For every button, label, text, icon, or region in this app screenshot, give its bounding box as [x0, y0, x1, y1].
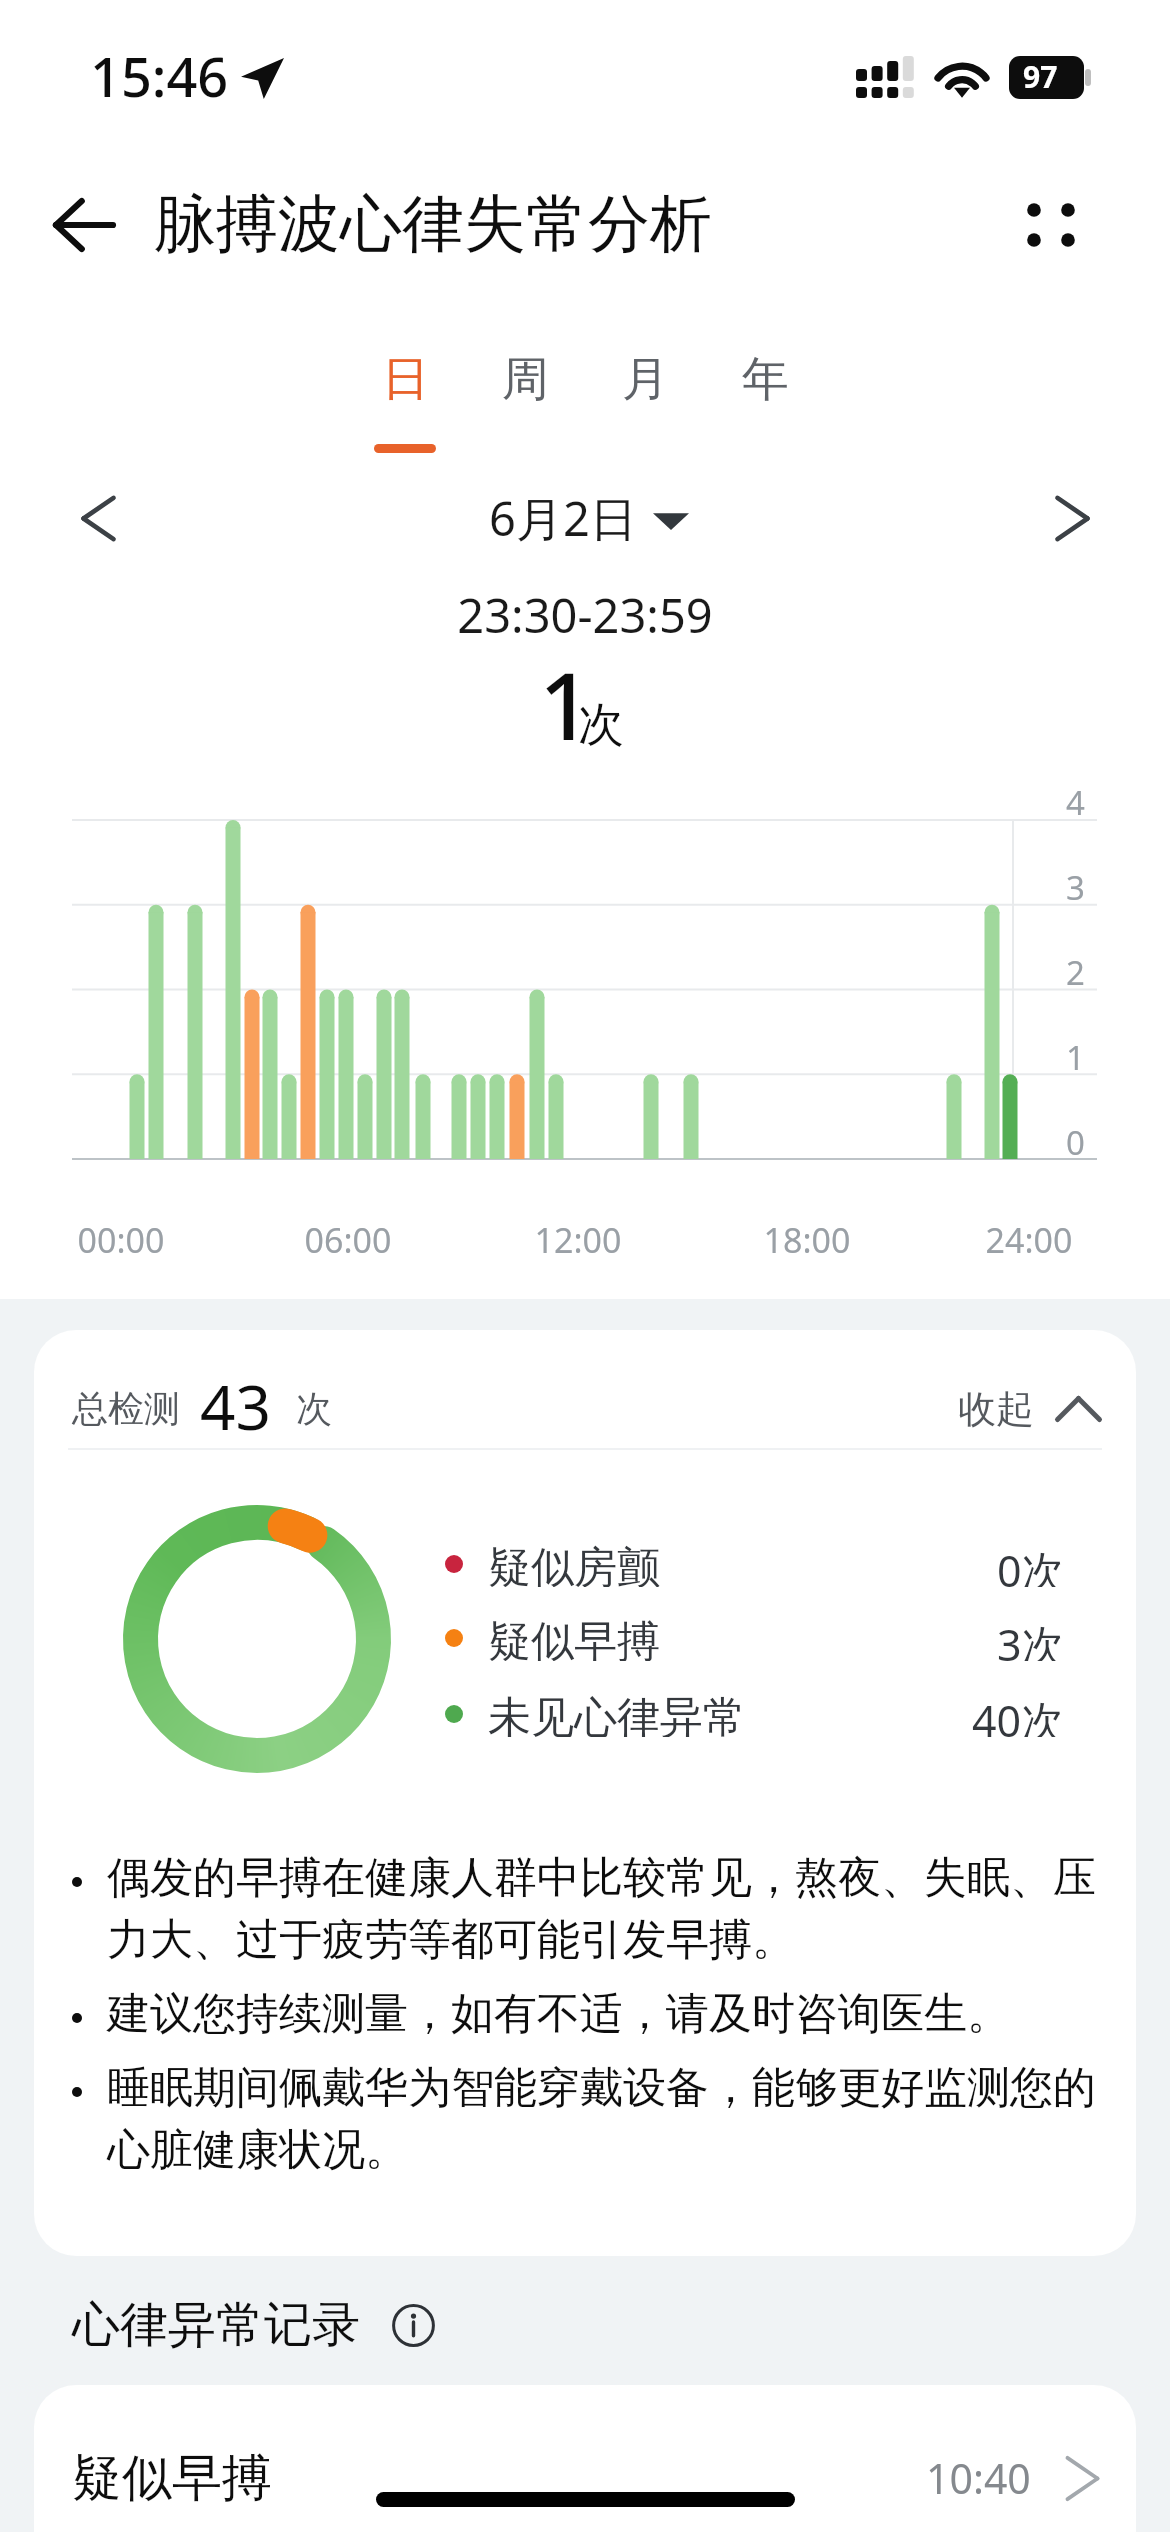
staticText: 4 — [1066, 780, 1085, 825]
staticText: 建议您持续测量，如有不适，请及时咨询医生。 — [107, 1987, 1107, 2041]
staticText: 3次 — [997, 1615, 1065, 1661]
staticText: 12:00 — [508, 1217, 648, 1263]
button[interactable]: More options — [1006, 180, 1096, 270]
staticText: 15:46 — [90, 39, 229, 113]
staticText: 疑似房颤 — [488, 1541, 660, 1587]
button[interactable]: 总检测 — [34, 1330, 1136, 1448]
staticText: 月 — [622, 350, 669, 409]
staticText: 40次 — [972, 1691, 1065, 1737]
staticText: 次 — [578, 696, 624, 754]
staticText: 18:00 — [737, 1217, 877, 1263]
button[interactable]: 日 — [345, 350, 465, 453]
staticText: 24:00 — [959, 1217, 1099, 1263]
button[interactable]: Previous day — [58, 478, 138, 558]
button[interactable]: 月 — [585, 350, 705, 453]
button[interactable]: 疑似早搏 — [34, 2385, 1136, 2532]
staticText: 06:00 — [278, 1217, 418, 1263]
staticText: 年 — [742, 350, 789, 409]
staticText: 00:00 — [51, 1217, 191, 1263]
staticText: 10:40 — [926, 2450, 1031, 2506]
staticText: 3 — [1066, 865, 1085, 910]
staticText: 脉搏波心律失常分析 — [154, 185, 712, 263]
staticText: 次 — [296, 1386, 332, 1431]
staticText: 1 — [539, 642, 592, 767]
staticText: 97 — [1023, 56, 1058, 97]
button[interactable]: 年 — [705, 350, 825, 453]
button[interactable]: Back — [36, 177, 132, 273]
staticText: 总检测 — [72, 1386, 180, 1431]
button[interactable]: Info — [391, 2303, 435, 2347]
staticText: 日 — [382, 350, 429, 409]
staticText: 周 — [502, 350, 549, 409]
staticText: 0次 — [997, 1541, 1065, 1587]
staticText: 未见心律异常 — [488, 1691, 746, 1737]
staticText: 6月2日 — [489, 486, 637, 550]
staticText: 疑似早搏 — [72, 2447, 272, 2510]
staticText: 23:30-23:59 — [0, 583, 1170, 647]
staticText: 疑似早搏 — [488, 1615, 660, 1661]
button[interactable]: 6月2日 — [489, 486, 689, 550]
staticText: 心律异常记录 — [72, 2295, 360, 2355]
staticText: 睡眠期间佩戴华为智能穿戴设备，能够更好监测您的心脏健康状况。 — [107, 2061, 1107, 2177]
staticText: 43 — [200, 1364, 271, 1448]
button[interactable]: Next day — [1032, 478, 1112, 558]
staticText: 偶发的早搏在健康人群中比较常见，熬夜、失眠、压力大、过于疲劳等都可能引发早搏。 — [107, 1851, 1107, 1967]
staticText: 2 — [1066, 950, 1085, 995]
staticText: 收起 — [958, 1385, 1034, 1433]
staticText: 0 — [1066, 1120, 1085, 1165]
button[interactable]: 周 — [465, 350, 585, 453]
staticText: 1 — [1066, 1035, 1085, 1080]
